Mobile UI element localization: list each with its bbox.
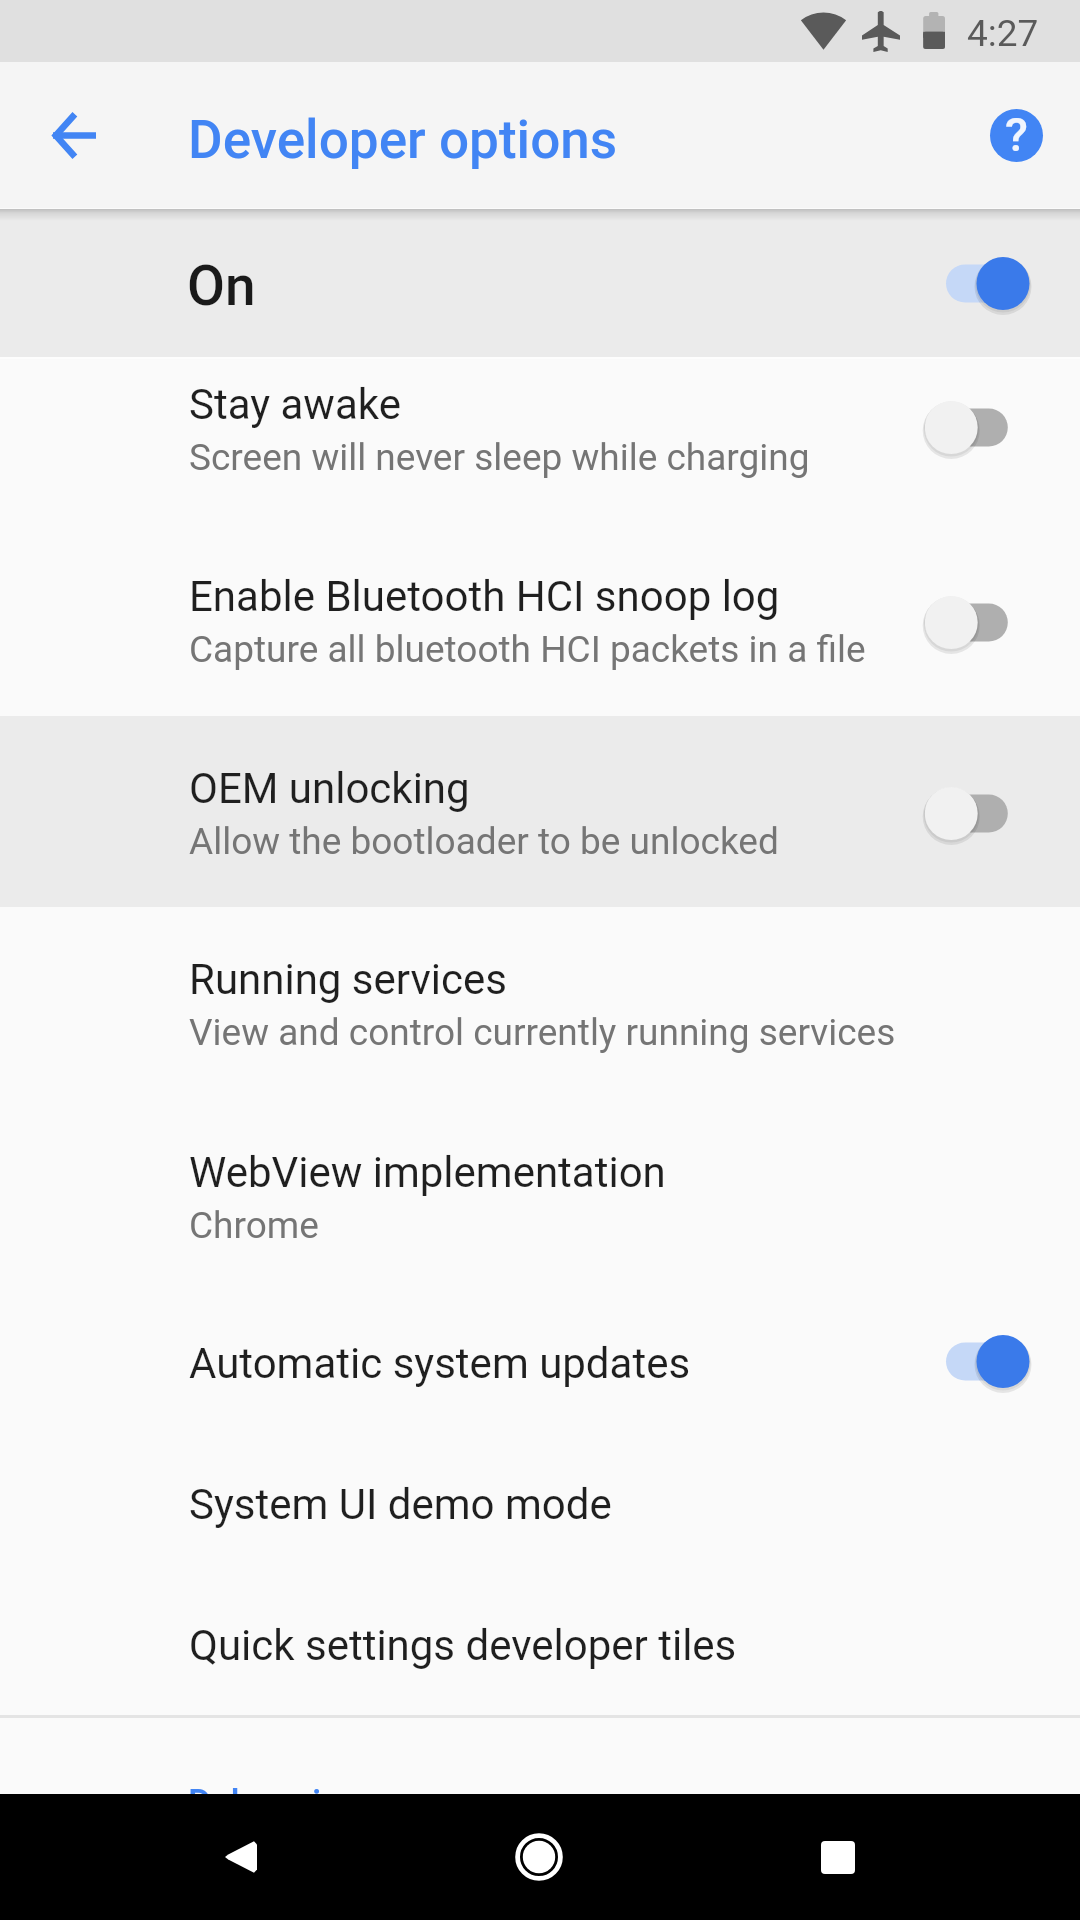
button[interactable]: Quick settings developer tiles xyxy=(0,1571,1080,1712)
staticText: Running services xyxy=(189,955,507,1004)
staticText: Capture all bluetooth HCI packets in a f… xyxy=(189,628,866,671)
button[interactable]: Home xyxy=(469,1794,609,1920)
button[interactable]: Stay awake xyxy=(0,330,1080,521)
staticText: WebView implementation xyxy=(189,1148,666,1197)
staticText: Chrome xyxy=(189,1204,319,1247)
staticText: Quick settings developer tiles xyxy=(189,1621,737,1670)
staticText: Stay awake xyxy=(189,380,401,429)
button[interactable]: Enable Bluetooth HCI snoop log xyxy=(0,525,1080,716)
staticText: Screen will never sleep while charging xyxy=(189,436,810,479)
button[interactable]: Recent apps xyxy=(768,1794,908,1920)
button[interactable]: On xyxy=(0,209,1080,357)
staticText: Debugging xyxy=(188,1782,362,1824)
staticText: 4:27 xyxy=(967,12,1039,55)
button[interactable]: Help xyxy=(970,89,1062,181)
button[interactable]: OEM unlocking xyxy=(0,716,1080,907)
staticText: ? xyxy=(1005,107,1028,162)
staticText: On xyxy=(187,254,256,318)
staticText: System UI demo mode xyxy=(189,1480,612,1529)
button[interactable]: Running services xyxy=(0,907,1080,1098)
button[interactable]: Back xyxy=(171,1794,311,1920)
staticText: View and control currently running servi… xyxy=(189,1011,896,1054)
staticText: Enable Bluetooth HCI snoop log xyxy=(189,572,780,621)
staticText: OEM unlocking xyxy=(189,764,470,813)
button[interactable]: WebView implementation xyxy=(0,1098,1080,1289)
staticText: Automatic system updates xyxy=(189,1339,691,1388)
staticText: Developer options xyxy=(188,109,618,171)
button[interactable]: Automatic system updates xyxy=(0,1289,1080,1430)
button[interactable]: System UI demo mode xyxy=(0,1430,1080,1571)
staticText: Allow the bootloader to be unlocked xyxy=(189,820,779,863)
button[interactable]: Navigate up xyxy=(28,89,120,181)
